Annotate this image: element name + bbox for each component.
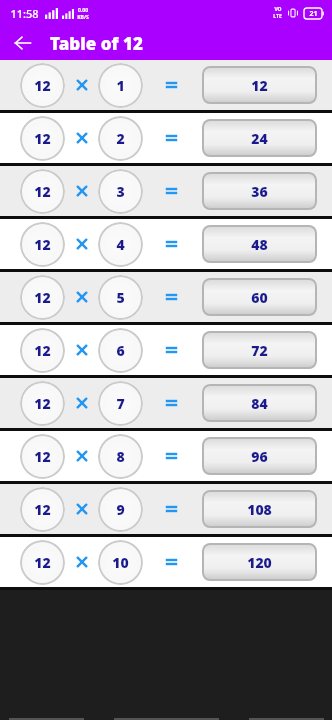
staticText: 8 <box>116 447 125 466</box>
button[interactable]: 72 <box>202 331 317 369</box>
button[interactable]: 60 <box>202 278 317 316</box>
staticText: 6 <box>116 341 125 360</box>
button[interactable]: 12 <box>0 325 332 375</box>
staticText: 3 <box>116 182 125 201</box>
staticText: 12 <box>34 129 51 148</box>
staticText: 12 <box>34 500 51 519</box>
staticText: 4 <box>116 235 125 254</box>
button[interactable]: 84 <box>202 384 317 422</box>
button[interactable]: 12 <box>0 60 332 110</box>
staticText: 12 <box>34 447 51 466</box>
button[interactable]: 48 <box>202 225 317 263</box>
button[interactable]: 120 <box>202 543 317 581</box>
button[interactable]: 12 <box>0 113 332 163</box>
staticText: 84 <box>251 394 268 413</box>
button[interactable]: 12 <box>0 272 332 322</box>
button[interactable]: 24 <box>202 119 317 157</box>
staticText: 12 <box>34 341 51 360</box>
staticText: 96 <box>251 447 268 466</box>
staticText: VO <box>274 6 282 13</box>
staticText: 24 <box>251 129 268 148</box>
button[interactable]: 12 <box>0 166 332 216</box>
staticText: 12 <box>34 235 51 254</box>
staticText: 48 <box>251 235 268 254</box>
staticText: 12 <box>34 182 51 201</box>
staticText: 120 <box>247 553 272 572</box>
staticText: 21 <box>309 9 318 19</box>
button[interactable]: 36 <box>202 172 317 210</box>
staticText: 9 <box>116 500 125 519</box>
staticText: 72 <box>251 341 268 360</box>
staticText: 1 <box>116 76 125 95</box>
staticText: 36 <box>251 182 268 201</box>
staticText: Table of 12 <box>50 32 143 55</box>
button[interactable]: 96 <box>202 437 317 475</box>
staticText: 7 <box>116 394 125 413</box>
button[interactable]: 12 <box>0 219 332 269</box>
staticText: 108 <box>247 500 272 519</box>
staticText: 12 <box>34 76 51 95</box>
staticText: 60 <box>251 288 268 307</box>
staticText: 10 <box>112 553 129 572</box>
staticText: 12 <box>34 394 51 413</box>
staticText: LTE <box>273 13 282 20</box>
button[interactable]: Back <box>6 26 40 60</box>
staticText: 5 <box>116 288 125 307</box>
staticText: 12 <box>34 288 51 307</box>
staticText: 0.00 <box>78 7 88 14</box>
staticText: 2 <box>116 129 125 148</box>
button[interactable]: 108 <box>202 490 317 528</box>
button[interactable]: 12 <box>0 537 332 587</box>
staticText: 12 <box>251 76 268 95</box>
button[interactable]: 12 <box>0 378 332 428</box>
button[interactable]: 12 <box>0 484 332 534</box>
staticText: KB/S <box>77 14 89 21</box>
button[interactable]: 12 <box>202 66 317 104</box>
staticText: 12 <box>34 553 51 572</box>
staticText: 11:58 <box>10 6 39 21</box>
button[interactable]: 12 <box>0 431 332 481</box>
